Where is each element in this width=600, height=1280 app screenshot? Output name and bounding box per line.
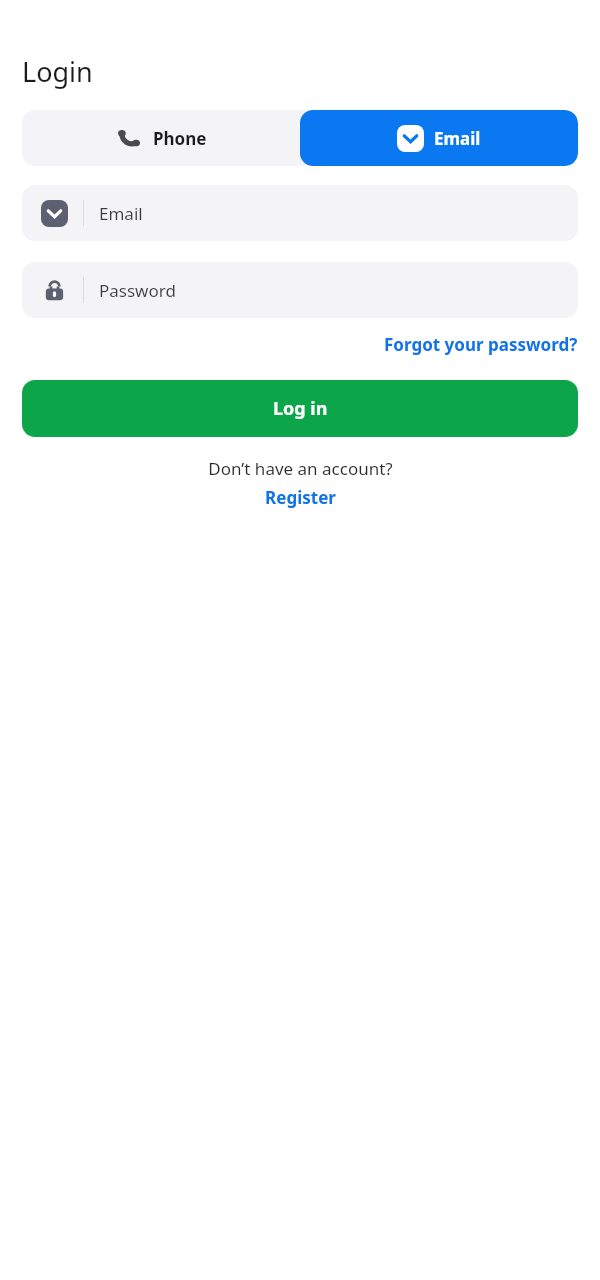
staticText: Login bbox=[22, 53, 93, 90]
button[interactable]: Password bbox=[22, 262, 578, 318]
button[interactable]: Email bbox=[22, 185, 578, 241]
other: Password bbox=[41, 277, 68, 304]
staticText: Log in bbox=[273, 396, 328, 421]
other: Email bbox=[41, 200, 68, 227]
staticText: Don’t have an account? bbox=[208, 457, 393, 480]
button[interactable]: Log in bbox=[22, 380, 578, 437]
staticText: Email bbox=[434, 127, 481, 150]
staticText: Phone bbox=[153, 127, 207, 150]
other: Email bbox=[397, 125, 424, 152]
button[interactable]: Forgot your password? bbox=[384, 331, 578, 358]
button[interactable]: Email bbox=[300, 110, 578, 166]
button[interactable]: Phone bbox=[22, 110, 300, 166]
staticText: Password bbox=[99, 279, 176, 302]
other: Phone bbox=[116, 125, 142, 151]
staticText: Email bbox=[99, 202, 143, 225]
button[interactable]: Register bbox=[259, 485, 342, 510]
